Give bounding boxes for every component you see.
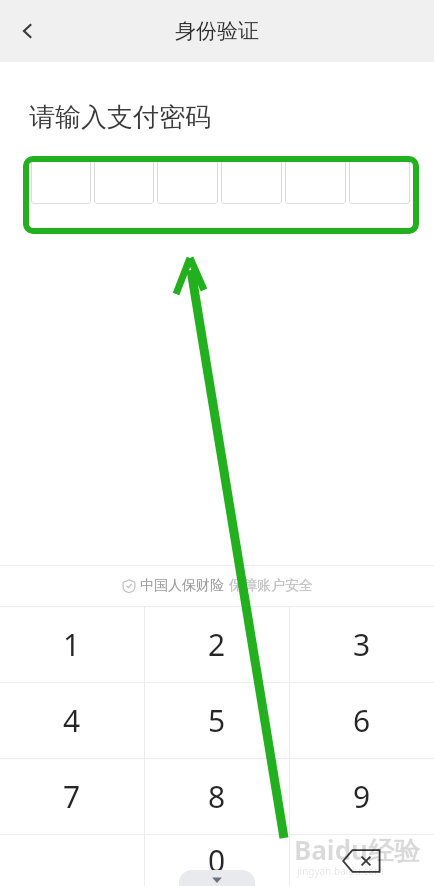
- button[interactable]: Hide keyboard: [179, 870, 255, 886]
- button[interactable]: 9: [290, 759, 434, 834]
- button[interactable]: 1: [0, 607, 144, 682]
- staticText: jingyan.baidu.com: [297, 864, 384, 878]
- staticText: 3: [353, 624, 371, 665]
- button[interactable]: 6: [290, 683, 434, 758]
- button[interactable]: 7: [0, 759, 144, 834]
- staticText: Baidu经验: [294, 832, 420, 868]
- staticText: 身份验证: [175, 18, 259, 44]
- staticText: 0: [208, 840, 226, 881]
- button[interactable]: Delete: [290, 835, 434, 886]
- button[interactable]: [285, 159, 346, 204]
- staticText: 请输入支付密码: [29, 101, 211, 134]
- button[interactable]: 8: [145, 759, 289, 834]
- button[interactable]: [94, 159, 154, 204]
- staticText: 4: [63, 700, 81, 741]
- button[interactable]: 5: [145, 683, 289, 758]
- button[interactable]: [31, 159, 91, 204]
- button[interactable]: 2: [145, 607, 289, 682]
- button[interactable]: [157, 159, 218, 204]
- staticText: 7: [63, 776, 81, 817]
- button[interactable]: Back: [0, 0, 56, 62]
- staticText: 9: [353, 776, 371, 817]
- button[interactable]: [349, 159, 410, 204]
- staticText: 保障账户安全: [229, 577, 313, 595]
- staticText: 1: [63, 624, 81, 665]
- staticText: 中国人保财险: [140, 577, 224, 595]
- staticText: 5: [208, 700, 226, 741]
- staticText: 6: [353, 700, 371, 741]
- button[interactable]: 4: [0, 683, 144, 758]
- staticText: 8: [208, 776, 226, 817]
- button[interactable]: 0: [145, 835, 289, 886]
- button[interactable]: [221, 159, 282, 204]
- button[interactable]: 3: [290, 607, 434, 682]
- staticText: 2: [208, 624, 226, 665]
